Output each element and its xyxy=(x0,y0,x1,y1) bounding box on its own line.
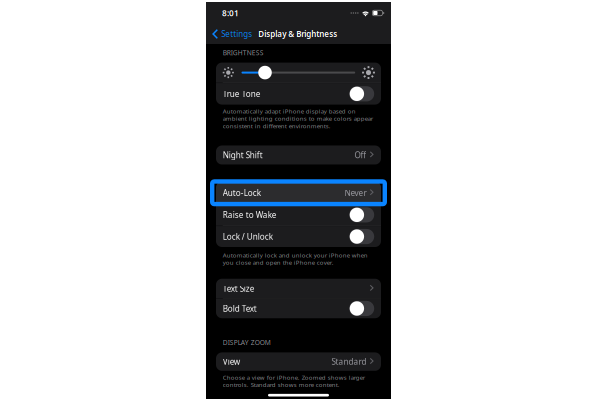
staticText: controls. Standard shows more content. xyxy=(223,381,340,389)
staticText: Never xyxy=(344,187,366,198)
button[interactable]: Raise to Wake xyxy=(216,204,381,226)
staticText: Lock / Unlock xyxy=(223,231,273,242)
staticText: ambient lighting conditions to make colo… xyxy=(223,114,373,123)
staticText: consistent in different environments. xyxy=(223,122,331,130)
staticText: Settings xyxy=(221,29,252,39)
button[interactable]: Auto-Lock xyxy=(216,181,381,204)
staticText: BRIGHTNESS xyxy=(223,48,264,57)
button[interactable]: Night Shift xyxy=(216,145,381,164)
staticText: True Tone xyxy=(223,88,261,99)
staticText: Bold Text xyxy=(223,303,257,314)
staticText: Off xyxy=(354,149,366,161)
staticText: Choose a view for iPhone. Zoomed shows l… xyxy=(223,373,365,381)
staticText: you close and open the iPhone cover. xyxy=(223,258,334,267)
staticText: Display & Brightness xyxy=(258,29,337,39)
staticText: Auto-Lock xyxy=(223,187,261,198)
button[interactable]: True Tone xyxy=(216,83,381,105)
button[interactable]: Text Size xyxy=(216,279,381,298)
staticText: 8:01 xyxy=(222,7,239,19)
button[interactable]: Lock / Unlock xyxy=(216,226,381,247)
staticText: Night Shift xyxy=(223,149,263,161)
staticText: DISPLAY ZOOM xyxy=(223,338,271,347)
staticText: Raise to Wake xyxy=(223,209,277,220)
staticText: Automatically adapt iPhone display based… xyxy=(223,107,356,115)
staticText: Text Size xyxy=(223,283,255,294)
staticText: View xyxy=(223,356,240,367)
staticText: Automatically lock and unlock your iPhon… xyxy=(223,251,368,259)
button[interactable]: Settings xyxy=(212,26,252,42)
staticText: Standard xyxy=(331,356,366,367)
button[interactable]: View xyxy=(216,352,381,371)
button[interactable]: Bold Text xyxy=(216,299,381,318)
